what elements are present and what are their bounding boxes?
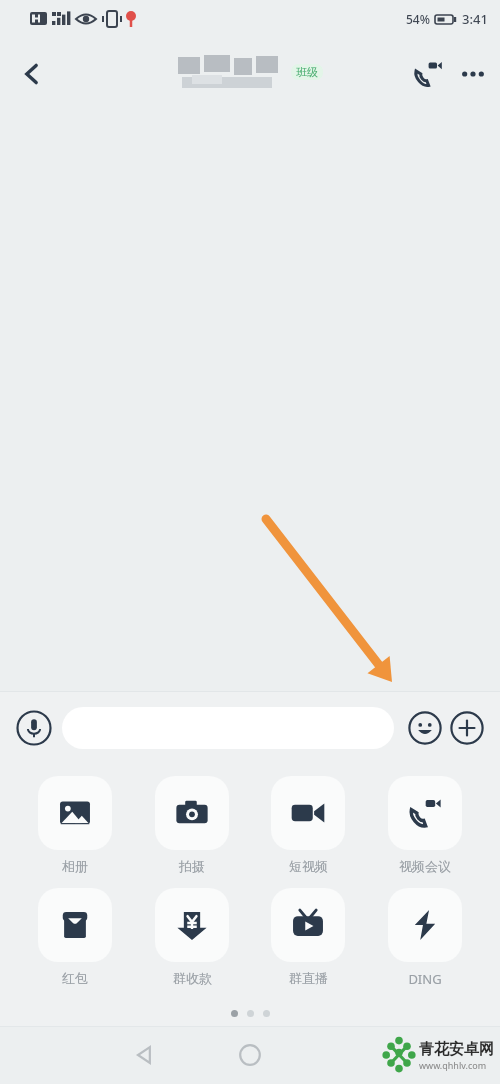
button[interactable]: Home bbox=[215, 1026, 285, 1084]
staticText: 短视频 bbox=[289, 858, 328, 874]
button[interactable]: 红包 bbox=[33, 888, 117, 986]
button[interactable]: 群直播 bbox=[266, 888, 350, 986]
button[interactable]: 短视频 bbox=[266, 776, 350, 874]
staticText: www.qhhlv.com bbox=[419, 1059, 487, 1071]
staticText: DING bbox=[408, 970, 442, 988]
button[interactable]: Emoji bbox=[404, 707, 446, 749]
staticText: 群直播 bbox=[289, 970, 328, 986]
staticText: 群收款 bbox=[173, 970, 212, 986]
button[interactable]: 拍摄 bbox=[150, 776, 234, 874]
staticText: 拍摄 bbox=[179, 858, 205, 874]
button[interactable]: Back bbox=[8, 50, 56, 98]
button[interactable]: Back bbox=[75, 1026, 215, 1084]
staticText: 视频会议 bbox=[399, 858, 451, 874]
staticText: 相册 bbox=[62, 858, 88, 874]
button[interactable]: Add attachment bbox=[446, 707, 488, 749]
staticText: 红包 bbox=[62, 970, 88, 986]
button[interactable]: More options bbox=[452, 50, 494, 98]
staticText: 54% bbox=[406, 11, 430, 27]
button[interactable]: 群收款 bbox=[150, 888, 234, 986]
button[interactable]: Video call bbox=[404, 50, 452, 98]
button[interactable]: DING bbox=[383, 888, 467, 988]
staticText: 3:41 bbox=[462, 10, 488, 28]
button[interactable]: 视频会议 bbox=[383, 776, 467, 874]
staticText: 班级 bbox=[296, 65, 318, 79]
staticText: 青花安卓网 bbox=[419, 1040, 494, 1059]
button[interactable]: 相册 bbox=[33, 776, 117, 874]
button[interactable]: Voice input bbox=[12, 706, 56, 750]
